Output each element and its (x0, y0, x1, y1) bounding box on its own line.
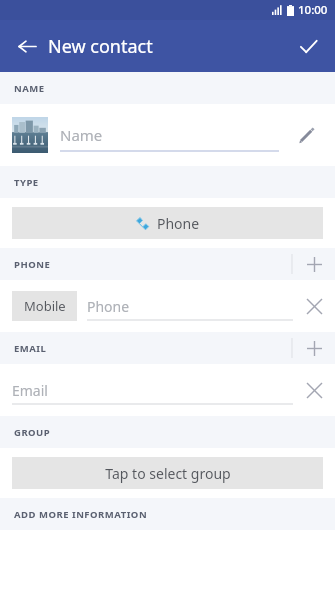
staticText: GROUP (14, 426, 51, 439)
staticText: Phone (87, 297, 130, 316)
button[interactable]: Contact photo (12, 117, 48, 153)
staticText: New contact (48, 34, 153, 59)
staticText: EMAIL (14, 342, 47, 355)
button[interactable]: Add email (293, 332, 335, 364)
staticText: NAME (14, 82, 45, 95)
button[interactable]: Edit name (289, 118, 323, 152)
staticText: ADD MORE INFORMATION (14, 508, 148, 521)
staticText: 10:00 (298, 2, 328, 18)
button[interactable]: Remove email (293, 364, 335, 416)
staticText: Name (60, 125, 103, 145)
button[interactable]: Tap to select group (12, 457, 323, 489)
button[interactable]: Back (8, 27, 46, 65)
button[interactable]: Mobile (12, 291, 77, 321)
staticText: PHONE (14, 258, 51, 271)
staticText: Phone (157, 214, 200, 233)
staticText: Mobile (24, 297, 66, 315)
button[interactable]: Remove phone (293, 280, 335, 332)
button[interactable]: Save (289, 27, 327, 65)
staticText: TYPE (14, 176, 39, 189)
button[interactable]: Add phone (293, 248, 335, 280)
staticText: Email (12, 381, 48, 400)
button[interactable]: Phone (12, 207, 323, 239)
staticText: Tap to select group (105, 464, 231, 483)
